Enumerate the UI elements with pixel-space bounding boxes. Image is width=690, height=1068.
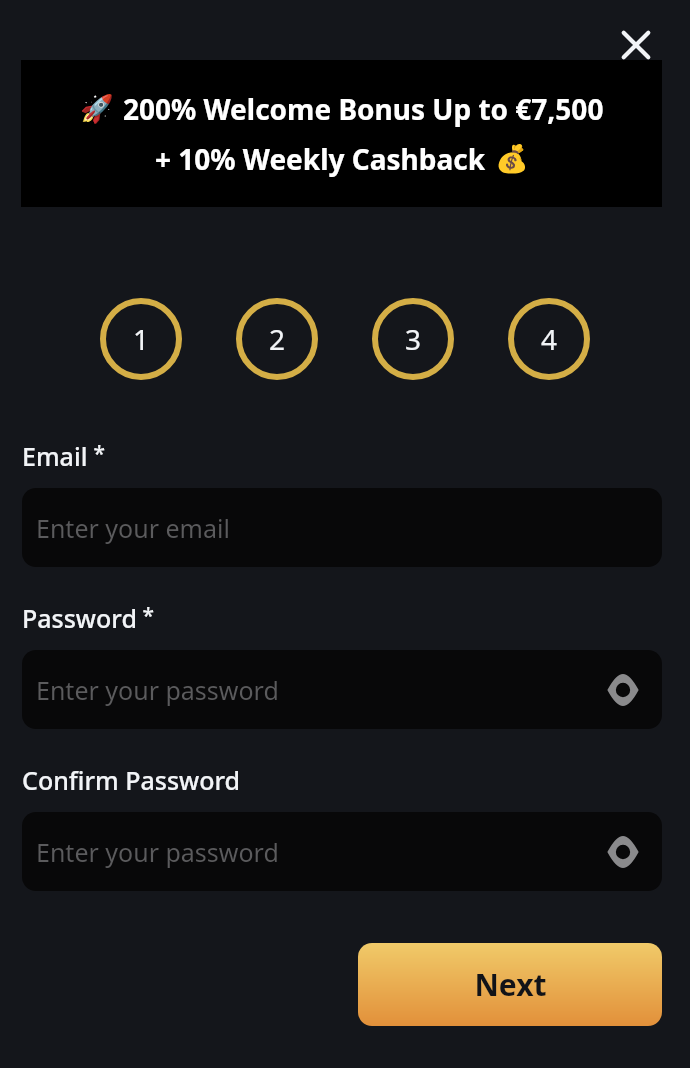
staticText: * [137,601,154,630]
staticText: Enter your password [36,673,279,707]
staticText: Password [22,601,137,635]
staticText: 🚀 [80,93,114,125]
staticText: 200% Welcome Bonus Up to €7,500 [123,90,604,128]
staticText: 💰 [495,143,529,175]
staticText: Email [22,439,88,473]
button[interactable]: 4 [508,298,590,380]
staticText: Enter your email [36,511,230,545]
button[interactable]: 3 [372,298,454,380]
button[interactable]: Toggle password visibility [603,670,643,710]
button[interactable]: 1 [100,298,182,380]
button[interactable]: Enter your password [22,650,662,729]
button[interactable]: Toggle password visibility [603,832,643,872]
staticText: Next [474,964,547,1005]
button[interactable]: Enter your password [22,812,662,891]
button[interactable]: Next [358,943,662,1026]
button[interactable]: Close [600,9,672,81]
staticText: Confirm Password [22,763,241,797]
other: Toggle password visibility [606,835,640,869]
staticText: * [88,439,105,468]
staticText: 4 [541,320,558,358]
other: Toggle password visibility [606,673,640,707]
button[interactable]: 🚀 [21,60,662,207]
staticText: + 10% Weekly Cashback [155,140,486,178]
staticText: 3 [405,320,422,358]
staticText: 1 [133,320,150,358]
button[interactable]: Enter your email [22,488,662,567]
staticText: 2 [269,320,286,358]
button[interactable]: 2 [236,298,318,380]
staticText: Enter your password [36,835,279,869]
